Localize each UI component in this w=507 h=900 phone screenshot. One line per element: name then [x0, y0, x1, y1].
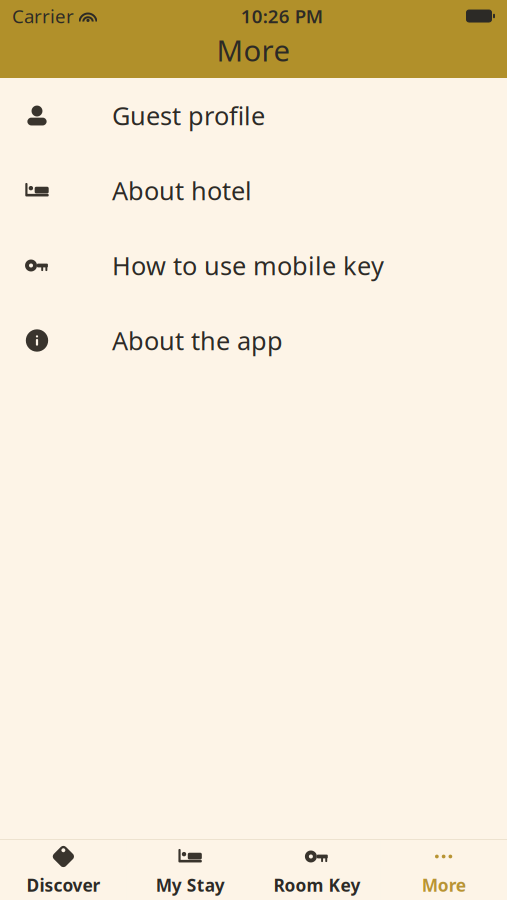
staticText: About the app: [112, 324, 283, 357]
staticText: My Stay: [156, 873, 225, 896]
staticText: Carrier: [12, 4, 74, 28]
staticText: More: [216, 30, 290, 69]
staticText: Room Key: [273, 873, 360, 896]
button[interactable]: About hotel: [0, 153, 507, 228]
button[interactable]: Room Key: [253, 840, 380, 900]
staticText: More: [422, 873, 466, 896]
button[interactable]: More: [380, 840, 507, 900]
staticText: Discover: [26, 873, 100, 896]
button[interactable]: About the app: [0, 303, 507, 378]
button[interactable]: My Stay: [127, 840, 254, 900]
button[interactable]: Guest profile: [0, 78, 507, 153]
staticText: Guest profile: [112, 99, 265, 132]
staticText: How to use mobile key: [112, 249, 384, 282]
staticText: About hotel: [112, 174, 252, 207]
staticText: 10:26 PM: [241, 4, 323, 28]
button[interactable]: Discover: [0, 840, 127, 900]
button[interactable]: How to use mobile key: [0, 228, 507, 303]
